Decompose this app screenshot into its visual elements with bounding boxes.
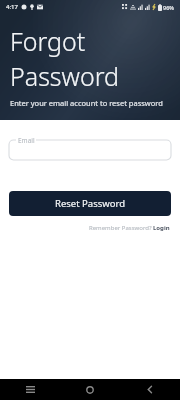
button[interactable]: Recent apps: [0, 379, 60, 400]
staticText: Remember Password?: [89, 224, 152, 232]
staticText: Password: [10, 59, 119, 93]
staticText: Forgot: [10, 24, 86, 58]
staticText: Login: [153, 224, 170, 232]
button[interactable]: Email: [9, 136, 171, 160]
staticText: 96%: [163, 4, 174, 11]
staticText: 4:17: [6, 3, 18, 11]
staticText: Enter your email account to reset passwo…: [10, 98, 163, 108]
button[interactable]: Back: [120, 379, 180, 400]
staticText: Email: [18, 136, 35, 145]
button[interactable]: Home: [60, 379, 120, 400]
button[interactable]: Reset Password: [9, 191, 171, 216]
staticText: Reset Password: [55, 197, 126, 210]
button[interactable]: Login: [152, 224, 170, 232]
